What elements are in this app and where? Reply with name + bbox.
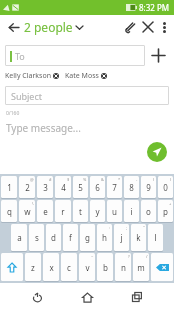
button[interactable]: v <box>79 253 95 281</box>
staticText: 2 people <box>24 19 73 35</box>
staticText: Kelly Clarkson <box>5 71 51 81</box>
staticText: 6 <box>95 182 100 193</box>
staticText: 5 <box>78 182 83 193</box>
staticText: y <box>95 206 100 217</box>
button[interactable]: 1 <box>1 176 17 198</box>
staticText: 1 <box>7 182 12 193</box>
staticText: 0/160 <box>6 110 20 117</box>
button[interactable]: l <box>148 224 163 251</box>
staticText: 0 <box>163 182 168 193</box>
staticText: x <box>49 262 54 273</box>
button[interactable]: Back <box>4 18 22 36</box>
staticText: @ <box>30 177 34 182</box>
button[interactable]: g <box>80 224 95 251</box>
button[interactable]: Subject <box>5 86 169 105</box>
button[interactable]: j <box>114 224 129 251</box>
staticText: f <box>69 232 72 243</box>
button[interactable]: w <box>19 200 35 222</box>
staticText: g <box>85 232 90 243</box>
button[interactable]: a <box>11 224 27 251</box>
button[interactable]: b <box>97 253 113 281</box>
staticText: \ <box>32 201 34 206</box>
button[interactable]: 2 people <box>24 19 83 35</box>
button[interactable]: y <box>90 200 105 222</box>
staticText: : <box>109 225 111 230</box>
staticText: v <box>85 262 90 273</box>
button[interactable]: f <box>63 224 78 251</box>
button[interactable]: u <box>107 200 122 222</box>
staticText: 2 <box>25 182 30 193</box>
button[interactable]: h <box>97 224 112 251</box>
button[interactable]: 6 <box>90 176 105 198</box>
button[interactable]: 8 <box>124 176 139 198</box>
button[interactable]: t <box>73 200 88 222</box>
staticText: 4 <box>61 182 66 193</box>
staticText: u <box>112 206 117 217</box>
button[interactable]: Type message... <box>6 121 81 135</box>
button[interactable]: Send <box>147 142 167 162</box>
staticText: m <box>137 262 145 273</box>
staticText: t <box>79 206 82 217</box>
button[interactable]: 3 <box>37 176 53 198</box>
staticText: / <box>146 254 148 259</box>
button[interactable]: 9 <box>141 176 156 198</box>
button[interactable]: k <box>131 224 146 251</box>
button[interactable]: Back <box>24 284 50 310</box>
staticText: 8 <box>129 182 134 193</box>
button[interactable]: r <box>55 200 71 222</box>
button[interactable]: Add recipient <box>145 42 171 68</box>
button[interactable]: 0 <box>158 176 173 198</box>
button[interactable]: Kate Moss <box>65 71 107 81</box>
staticText: k <box>136 232 141 243</box>
button[interactable]: More options <box>157 20 171 34</box>
staticText: z <box>31 262 35 273</box>
staticText: i <box>130 206 133 217</box>
staticText: l <box>154 232 157 243</box>
staticText: ( <box>153 177 155 182</box>
staticText: " <box>143 225 145 230</box>
staticText: 7 <box>112 182 117 193</box>
button[interactable]: 4 <box>55 176 71 198</box>
button[interactable]: o <box>141 200 156 222</box>
staticText: s <box>35 232 39 243</box>
button[interactable]: Close <box>139 18 157 36</box>
button[interactable]: m <box>133 253 149 281</box>
button[interactable]: e <box>37 200 53 222</box>
button[interactable]: 7 <box>107 176 122 198</box>
button[interactable]: n <box>115 253 131 281</box>
button[interactable]: i <box>124 200 139 222</box>
button[interactable]: s <box>29 224 44 251</box>
button[interactable]: 5 <box>73 176 88 198</box>
staticText: - <box>136 177 138 182</box>
button[interactable]: 2 <box>19 176 35 198</box>
staticText: j <box>120 232 123 243</box>
button[interactable]: Home <box>74 284 100 310</box>
button[interactable]: Recent apps <box>124 284 150 310</box>
staticText: r <box>61 206 65 217</box>
button[interactable]: d <box>46 224 61 251</box>
button[interactable]: x <box>43 253 59 281</box>
button[interactable]: z <box>25 253 41 281</box>
staticText: 9 <box>146 182 151 193</box>
button[interactable]: Backspace <box>151 253 173 281</box>
button[interactable]: Attach <box>121 18 139 36</box>
staticText: * <box>118 177 121 182</box>
staticText: $ <box>67 177 70 182</box>
staticText: h <box>102 232 107 243</box>
staticText: ; <box>126 225 128 230</box>
staticText: # <box>49 177 52 182</box>
staticText: ? <box>128 254 130 259</box>
button[interactable]: q <box>1 200 17 222</box>
staticText: ) <box>170 177 172 182</box>
button[interactable]: Shift <box>1 253 23 281</box>
button[interactable]: c <box>61 253 77 281</box>
staticText: 3 <box>43 182 48 193</box>
staticText: w <box>24 206 31 217</box>
button[interactable]: Kelly Clarkson <box>5 71 59 81</box>
button[interactable]: To <box>5 45 145 66</box>
staticText: q <box>7 206 12 217</box>
button[interactable]: p <box>158 200 173 222</box>
staticText: d <box>51 232 56 243</box>
staticText: o <box>146 206 151 217</box>
staticText: n <box>121 262 126 273</box>
